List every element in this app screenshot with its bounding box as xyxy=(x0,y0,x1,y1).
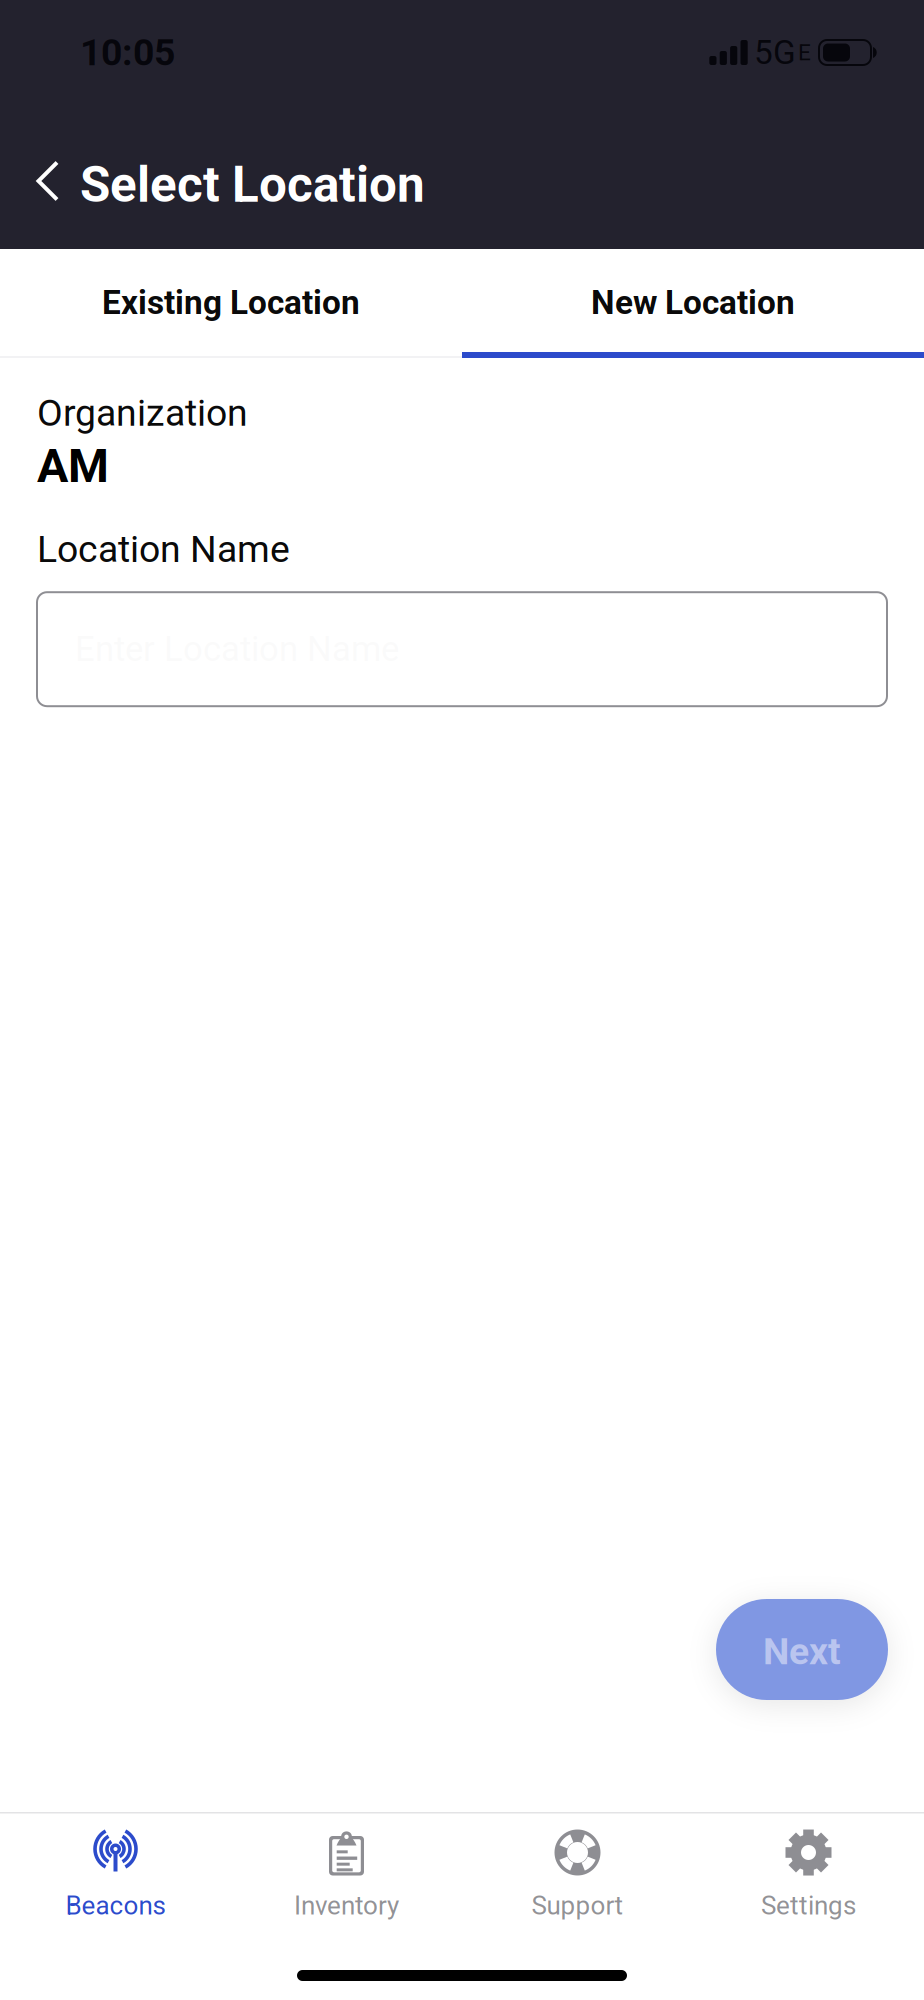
button[interactable]: Next xyxy=(716,1599,888,1700)
button[interactable]: Enter Location Name xyxy=(37,592,887,706)
staticText: AM xyxy=(37,439,109,493)
staticText: Next xyxy=(763,1630,841,1673)
staticText: Location Name xyxy=(37,527,290,571)
button[interactable]: Beacons xyxy=(0,1813,231,1943)
staticText: Existing Location xyxy=(102,283,360,322)
staticText: E xyxy=(798,39,811,66)
staticText: Beacons xyxy=(65,1890,165,1921)
staticText: Inventory xyxy=(294,1890,399,1921)
staticText: Organization xyxy=(37,391,248,435)
staticText: 10:05 xyxy=(80,31,175,74)
staticText: Select Location xyxy=(80,156,425,214)
button[interactable]: New Location xyxy=(462,249,924,352)
button[interactable]: Settings xyxy=(693,1813,924,1943)
button[interactable]: Inventory xyxy=(231,1813,462,1943)
staticText: Settings xyxy=(761,1890,856,1921)
staticText: New Location xyxy=(591,283,795,322)
button[interactable]: Back to Select Location xyxy=(0,105,449,249)
staticText: 5G xyxy=(754,33,796,72)
staticText: Support xyxy=(531,1890,623,1921)
button[interactable]: Support xyxy=(462,1813,693,1943)
button[interactable]: Existing Location xyxy=(0,249,462,352)
